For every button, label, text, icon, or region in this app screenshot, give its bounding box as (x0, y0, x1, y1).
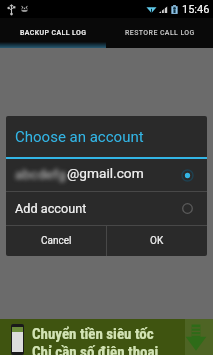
staticText: Choose an account (15, 128, 144, 146)
other: Install app (185, 324, 207, 351)
staticText: BACKUP CALL LOG (20, 29, 87, 37)
button[interactable]: RESTORE CALL LOG (106, 18, 213, 48)
button[interactable]: OK (107, 226, 207, 256)
button[interactable]: Add account (6, 192, 207, 225)
staticText: 15:46 (182, 3, 210, 16)
staticText: OK (150, 235, 164, 247)
staticText: Cancel (41, 235, 72, 247)
button[interactable]: Cancel (6, 226, 106, 256)
staticText: @gmail.com (67, 165, 144, 181)
staticText: Add account (15, 201, 87, 216)
staticText: abcdefghij (15, 166, 67, 183)
staticText: Chỉ cần số điện thoại (32, 343, 159, 355)
button[interactable]: Chuyển tiền siêu tốc (0, 319, 213, 355)
button[interactable]: BACKUP CALL LOG (0, 18, 106, 48)
staticText: RESTORE CALL LOG (125, 29, 195, 37)
staticText: Chuyển tiền siêu tốc (32, 325, 154, 343)
button[interactable]: abcdefghij (6, 159, 207, 191)
